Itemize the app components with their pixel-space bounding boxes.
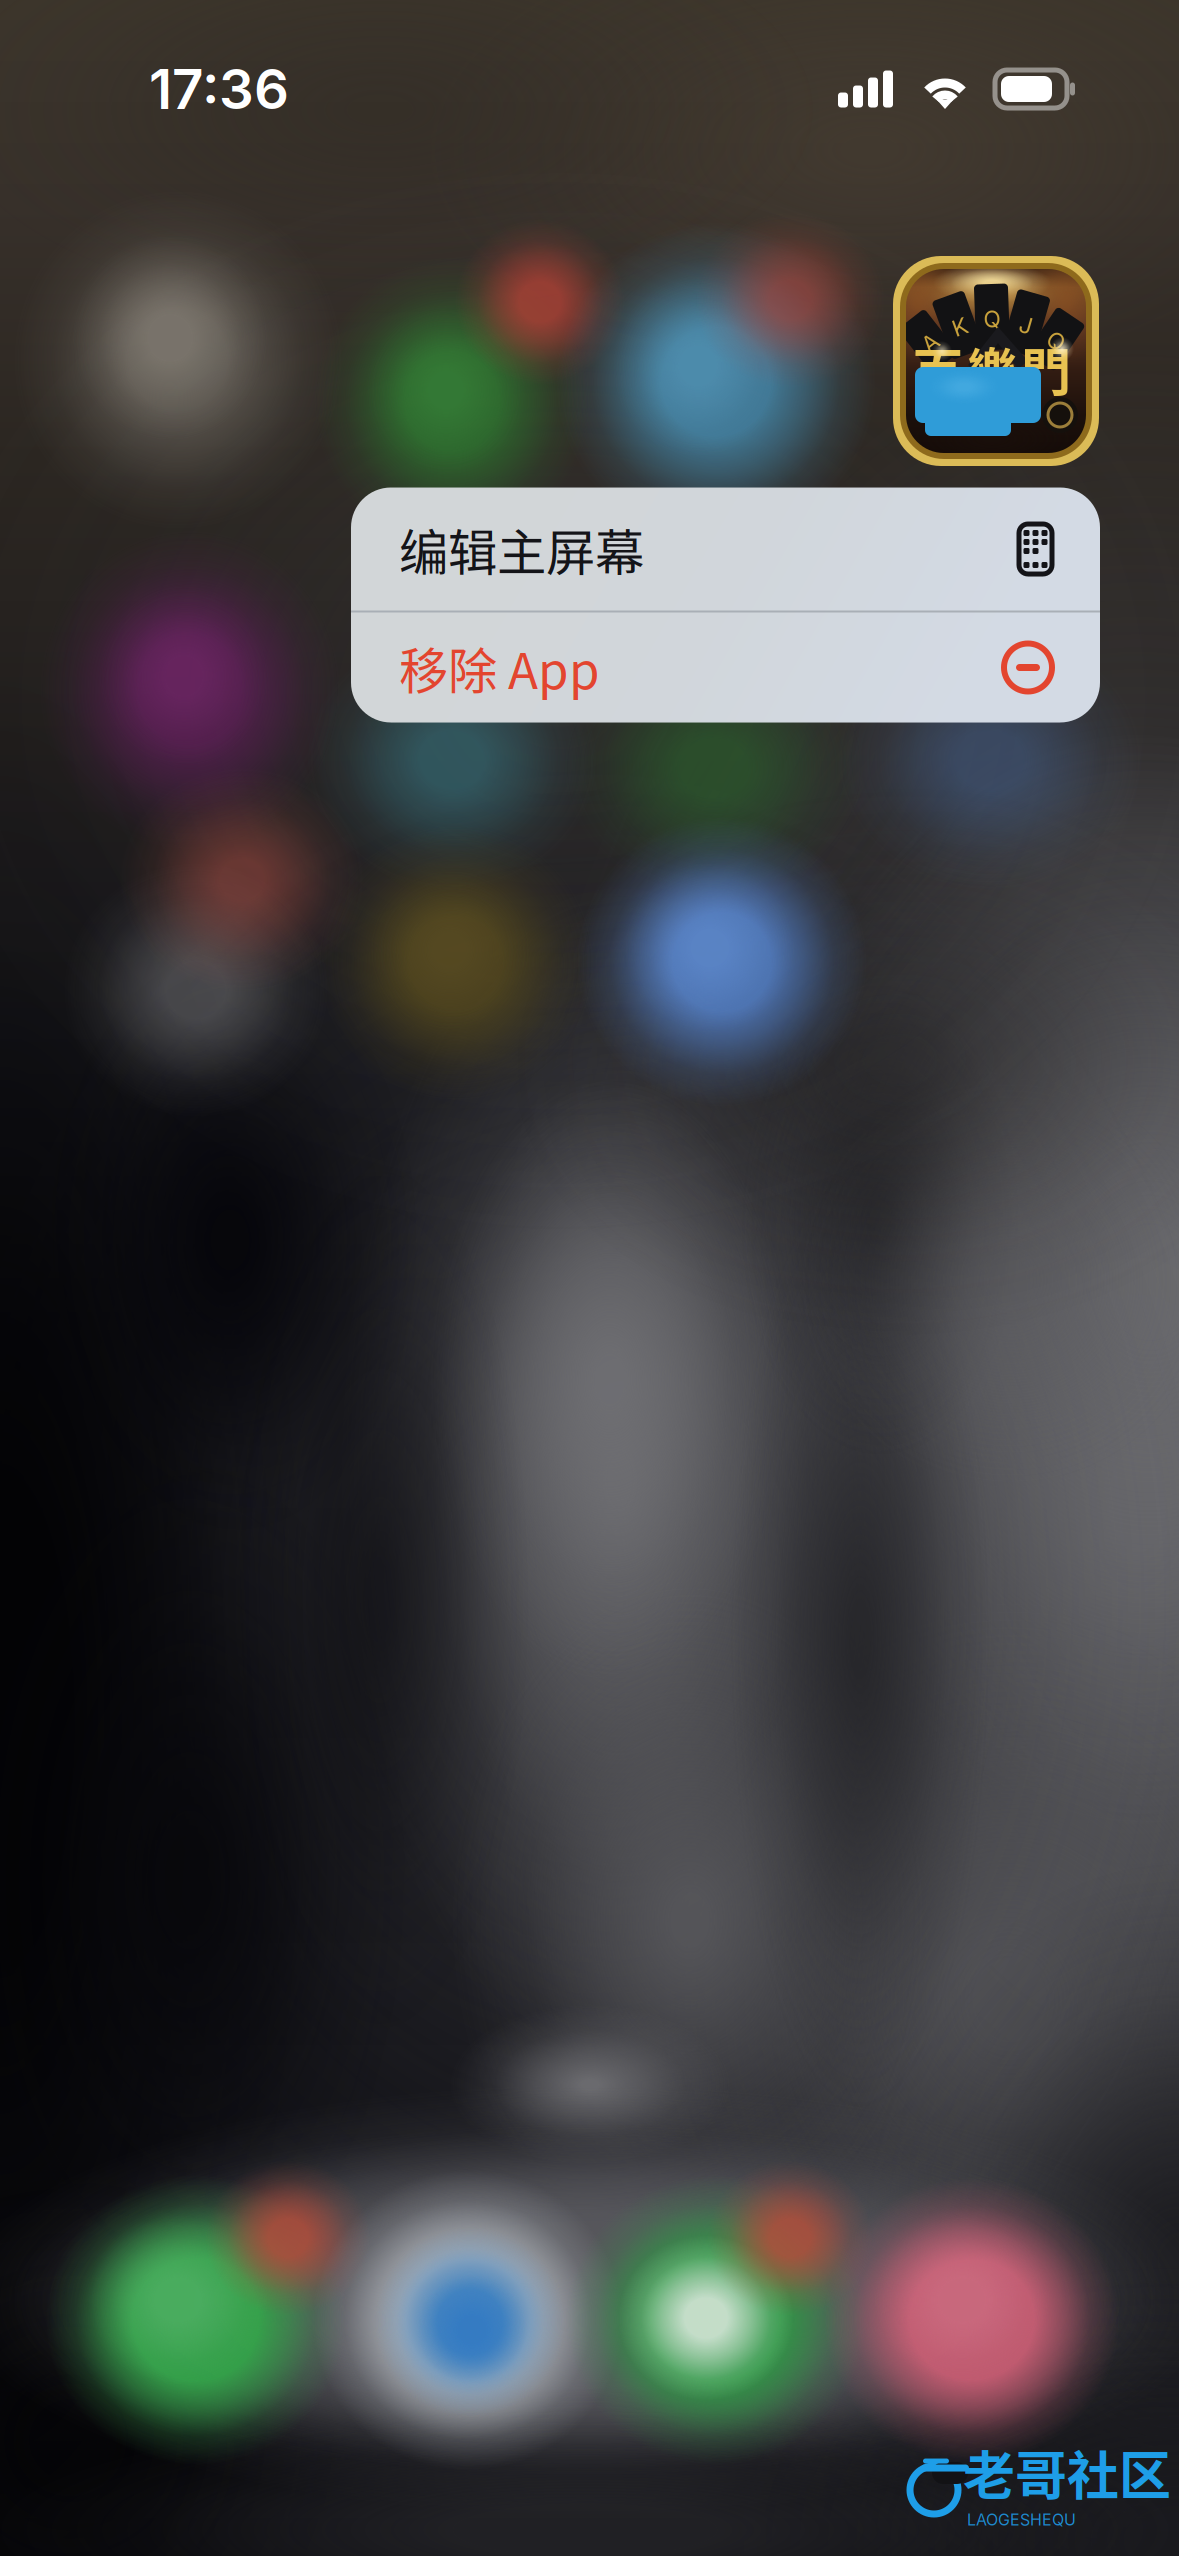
button[interactable]: 移除 App: [351, 612, 1100, 722]
button[interactable]: 编辑主屏幕: [351, 487, 1100, 610]
staticText: 老哥社区: [963, 2435, 1171, 2510]
staticText: LAOGESHEQU: [967, 2510, 1076, 2529]
staticText: 樂: [966, 332, 1017, 406]
staticText: 编辑主屏幕: [399, 513, 644, 585]
staticText: K: [952, 313, 967, 341]
staticText: Q: [983, 305, 1000, 333]
staticText: J: [1019, 311, 1032, 339]
staticText: Q: [1047, 327, 1064, 355]
staticText: A: [922, 329, 937, 357]
staticText: 移除 App: [399, 632, 600, 703]
staticText: 17:36: [149, 56, 289, 122]
staticText: 百: [912, 332, 963, 406]
staticText: 門: [1020, 332, 1071, 406]
